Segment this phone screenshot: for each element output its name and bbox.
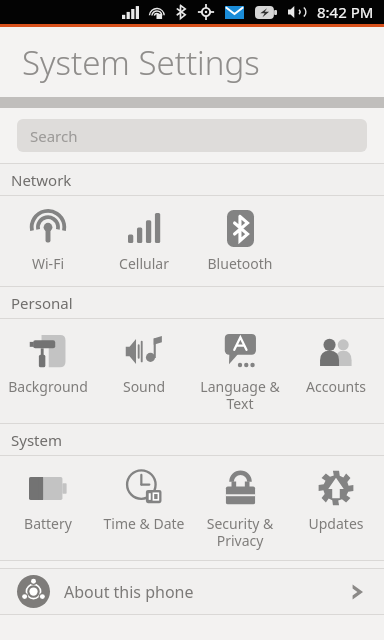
button[interactable]: Battery xyxy=(0,456,96,560)
staticText: Search xyxy=(30,126,78,146)
button[interactable]: Updates xyxy=(288,456,384,560)
staticText: Wi-Fi xyxy=(0,254,96,273)
staticText: 8:42 PM xyxy=(317,2,374,22)
button[interactable]: Wi-Fi xyxy=(0,196,96,286)
button[interactable]: Search xyxy=(17,119,367,152)
button[interactable]: Accounts xyxy=(288,319,384,423)
staticText: Accounts xyxy=(288,377,384,396)
staticText: System Settings xyxy=(22,40,260,85)
button[interactable]: Bluetooth xyxy=(192,196,288,286)
button[interactable]: Time & Date xyxy=(96,456,192,560)
staticText: Time & Date xyxy=(96,514,192,533)
other: About this phone xyxy=(342,577,372,607)
button[interactable]: Language & Text xyxy=(192,319,288,423)
staticText: Bluetooth xyxy=(192,254,288,273)
staticText: System xyxy=(11,430,62,450)
button[interactable]: Background xyxy=(0,319,96,423)
staticText: Security & Privacy xyxy=(192,514,288,550)
staticText: Sound xyxy=(96,377,192,396)
staticText: Battery xyxy=(0,514,96,533)
staticText: Background xyxy=(0,377,96,396)
staticText: About this phone xyxy=(64,581,342,603)
button[interactable]: Sound xyxy=(96,319,192,423)
staticText: Cellular xyxy=(96,254,192,273)
staticText: Personal xyxy=(11,293,73,313)
staticText: Language & Text xyxy=(192,377,288,413)
button[interactable]: Cellular xyxy=(96,196,192,286)
staticText: Updates xyxy=(288,514,384,533)
button[interactable]: About this phone xyxy=(0,569,384,614)
staticText: Network xyxy=(11,170,72,190)
button[interactable]: Security & Privacy xyxy=(192,456,288,560)
